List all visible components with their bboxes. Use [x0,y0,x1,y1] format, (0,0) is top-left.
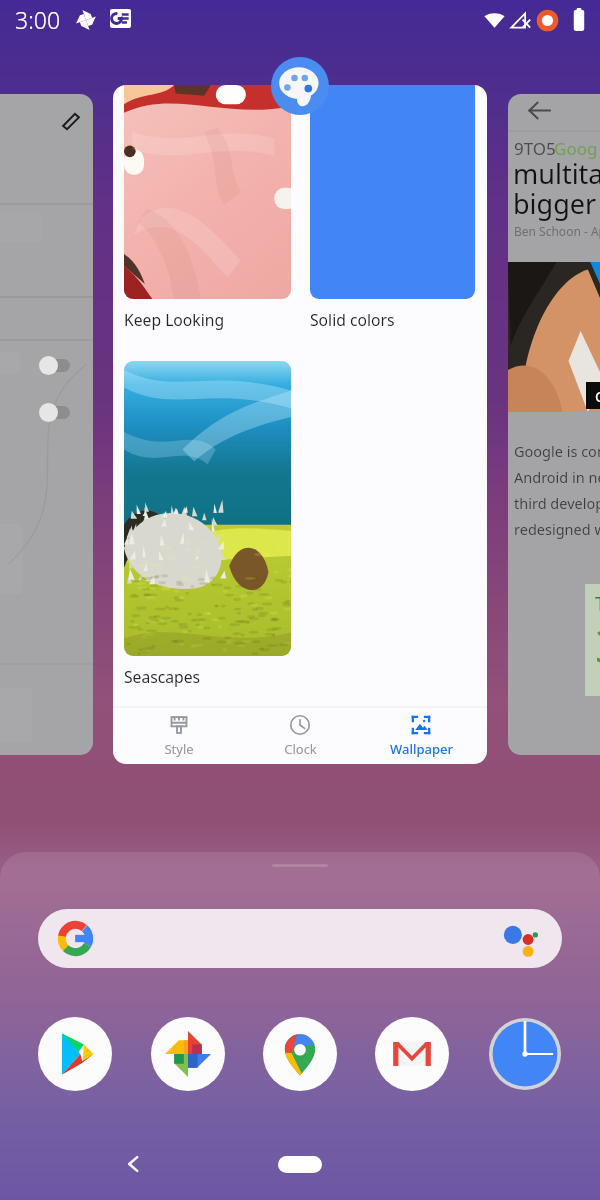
button[interactable] [124,85,291,299]
staticText: Toe [595,590,600,617]
staticText: Seascapes [124,666,201,687]
button[interactable] [0,94,93,755]
staticText: Google is con [514,441,600,461]
staticText: Goog [554,137,598,160]
staticText: bigger p [513,185,600,222]
staticText: 3 [595,614,600,677]
staticText: 3:00 [15,4,61,35]
button[interactable] [124,361,291,656]
button[interactable]: Style [124,708,234,764]
button[interactable]: Home [278,1156,322,1173]
button[interactable]: Wallpaper and style [271,57,329,115]
staticText: 9TO5 [514,137,556,160]
button[interactable]: 9TO5 [508,94,600,755]
staticText: Style [164,740,194,758]
button[interactable]: Photos [151,1017,225,1091]
staticText: third develope [514,493,600,513]
button[interactable]: Keep Looking [113,85,487,764]
button[interactable] [310,85,475,299]
staticText: Ben Schoon - Ap [514,223,600,239]
staticText: Clock [284,740,317,758]
staticText: Wallpaper [390,740,453,758]
staticText: C [595,386,600,406]
button[interactable]: Clock [245,708,355,764]
staticText: Solid colors [310,309,395,330]
button[interactable]: Clock [488,1017,562,1091]
staticText: redesigned w [514,519,600,539]
button[interactable]: Gmail [375,1017,449,1091]
button[interactable]: Wallpaper [366,708,476,764]
staticText: Android in ne [514,467,600,487]
button[interactable]: Maps [263,1017,337,1091]
staticText: multitask [513,155,600,192]
button[interactable]: Play Store [38,1017,112,1091]
staticText: Keep Looking [124,309,225,330]
button[interactable]: Search [38,909,562,968]
button[interactable]: Back [118,1146,148,1176]
